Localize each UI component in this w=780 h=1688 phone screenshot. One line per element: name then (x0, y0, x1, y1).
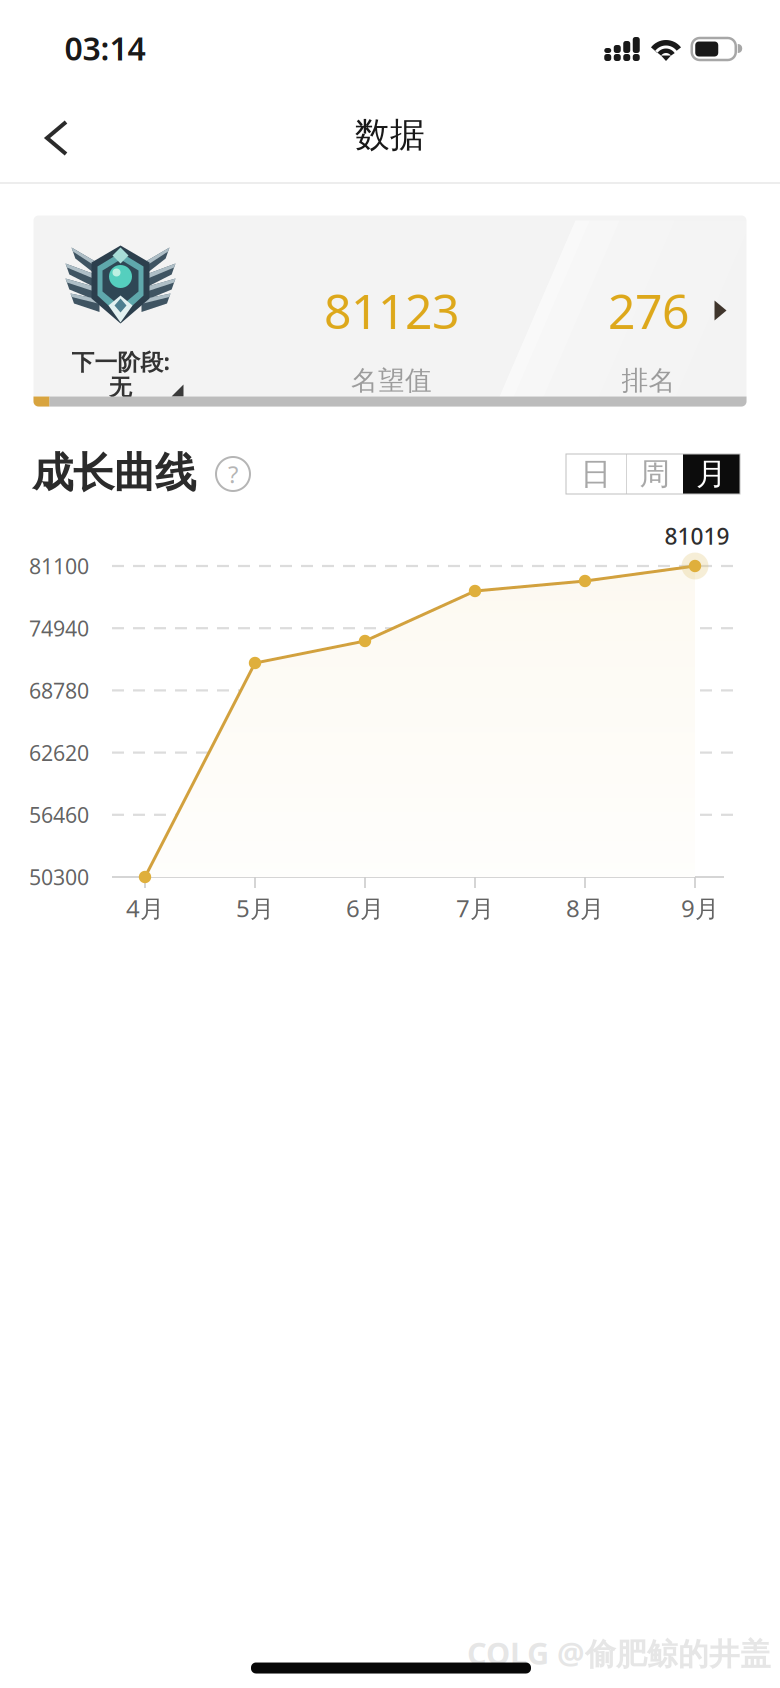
staticText: 周 (639, 455, 670, 493)
staticText: 下一阶段: (71, 346, 169, 376)
button[interactable]: 日 (566, 454, 626, 494)
staticText: 名望值 (351, 364, 432, 397)
button[interactable]: Help (211, 452, 255, 496)
staticText: 6月 (346, 892, 384, 924)
button[interactable]: 月 (683, 454, 740, 494)
staticText: 无 (109, 374, 132, 401)
staticText: 56460 (29, 801, 89, 829)
staticText: ? (228, 458, 238, 490)
staticText: 276 (608, 279, 689, 342)
staticText: 数据 (355, 114, 425, 156)
button[interactable]: 下一阶段: (33, 215, 746, 406)
staticText: 成长曲线 (32, 448, 196, 498)
staticText: 81123 (324, 279, 459, 342)
staticText: COLG @偷肥鲸的井盖 (467, 1633, 771, 1673)
staticText: 81019 (664, 521, 729, 551)
button[interactable]: 周 (627, 454, 683, 494)
staticText: 日 (580, 455, 611, 493)
staticText: 7月 (456, 892, 494, 924)
staticText: 月 (696, 455, 727, 493)
staticText: 62620 (29, 738, 89, 767)
staticText: 50300 (29, 863, 89, 891)
staticText: 68780 (29, 676, 89, 704)
staticText: 8月 (566, 892, 604, 924)
staticText: 5月 (236, 892, 274, 924)
staticText: 81100 (29, 552, 89, 580)
staticText: 74940 (29, 614, 89, 642)
staticText: 9月 (681, 892, 719, 924)
staticText: 03:14 (64, 27, 145, 69)
staticText: 4月 (126, 892, 164, 924)
staticText: 排名 (621, 364, 675, 397)
button[interactable]: Back (0, 94, 95, 184)
